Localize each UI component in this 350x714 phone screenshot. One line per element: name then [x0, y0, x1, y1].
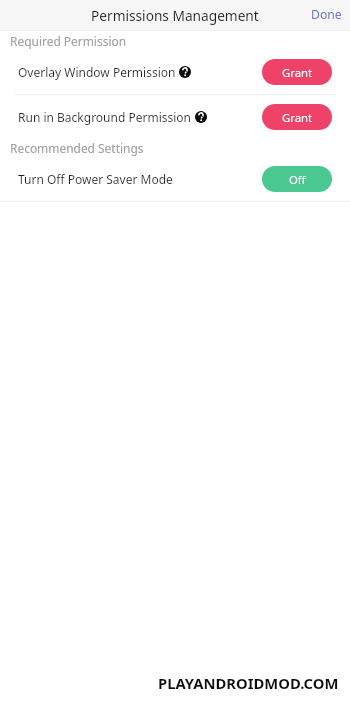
button[interactable]: Overlay Window Permission [0, 54, 350, 89]
staticText: Off [289, 172, 306, 187]
button[interactable]: Grant [262, 59, 332, 85]
button[interactable]: Help [179, 66, 191, 78]
button[interactable]: Grant [262, 104, 332, 130]
staticText: Required Permission [10, 33, 127, 49]
button[interactable]: Help [195, 111, 207, 123]
staticText: Recommended Settings [10, 140, 144, 156]
button[interactable]: Off [262, 166, 332, 192]
button[interactable]: Run in Background Permission [0, 99, 350, 134]
staticText: Permissions Management [91, 6, 259, 25]
button[interactable]: Done [297, 1, 350, 30]
staticText: Grant [282, 65, 313, 80]
staticText: Overlay Window Permission [18, 64, 176, 80]
staticText: Run in Background Permission [18, 109, 192, 125]
button[interactable]: Turn Off Power Saver Mode [0, 161, 350, 196]
staticText: Turn Off Power Saver Mode [18, 171, 173, 187]
staticText: Done [311, 6, 342, 23]
staticText: Grant [282, 110, 313, 125]
staticText: PLAYANDROIDMOD.COM [158, 673, 339, 693]
